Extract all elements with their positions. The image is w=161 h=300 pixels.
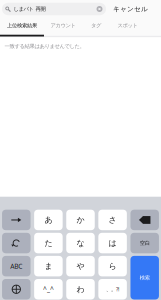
staticText: わ [76,284,84,294]
staticText: タグ [91,22,101,29]
button[interactable]: 検索 [130,256,159,299]
button[interactable]: 上位検索結果 [0,17,44,33]
button[interactable]: は [98,233,127,253]
staticText: ABC [10,262,22,271]
staticText: な [76,238,84,248]
button[interactable]: Clear text [96,6,102,12]
staticText: アカウント [50,22,75,29]
button[interactable]: ま [34,256,63,276]
staticText: あ [44,215,52,225]
button[interactable]: ABC [2,256,30,276]
button[interactable]: アカウント [44,17,82,33]
staticText: スポット [117,22,137,29]
button[interactable]: な [66,233,95,253]
staticText: は [109,238,117,248]
button[interactable]: た [34,233,63,253]
button[interactable]: 、。?! [98,279,127,299]
button[interactable]: キャンセル [106,2,155,16]
button[interactable]: Next candidate [2,210,30,230]
staticText: キャンセル [113,5,148,13]
button[interactable]: ら [98,256,127,276]
button[interactable]: 空白 [130,233,159,253]
staticText: 、。?! [106,286,119,293]
staticText: や [76,261,84,271]
button[interactable]: や [66,256,95,276]
staticText: た [44,238,52,248]
staticText: ら [109,261,117,271]
button[interactable]: スポット [110,17,145,33]
button[interactable]: あ [34,210,63,230]
button[interactable]: か [66,210,95,230]
button[interactable]: Delete [130,210,159,230]
staticText: か [76,215,84,225]
staticText: さ [109,215,117,225]
button[interactable]: Undo [2,233,30,253]
staticText: ^_^ [43,285,54,294]
staticText: 空白 [140,240,150,246]
staticText: 一致する結果はありませんでした。 [4,43,84,50]
staticText: 上位検索結果 [7,22,37,29]
button[interactable]: さ [98,210,127,230]
button[interactable]: ^_^ [34,279,63,299]
button[interactable]: Next keyboard [2,279,30,299]
button[interactable]: わ [66,279,95,299]
staticText: しまパト 再開 [14,6,46,12]
staticText: ま [44,261,52,271]
button[interactable]: タグ [82,17,110,33]
staticText: 検索 [140,274,150,281]
